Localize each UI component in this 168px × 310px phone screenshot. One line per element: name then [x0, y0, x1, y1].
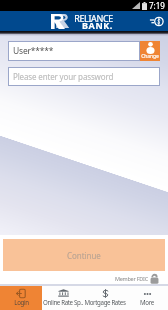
staticText: User*****: [13, 45, 54, 57]
button[interactable]: Quick transfer: [144, 11, 168, 32]
button[interactable]: More: [126, 286, 168, 310]
button[interactable]: Change: [140, 41, 160, 61]
staticText: Login: [14, 298, 29, 306]
staticText: 7:19: [149, 0, 165, 11]
button[interactable]: Continue: [3, 239, 165, 271]
staticText: Online Rate Sp..: [43, 298, 83, 306]
button[interactable]: User*****: [8, 41, 140, 61]
button[interactable]: Login: [0, 286, 42, 310]
staticText: Please enter your password: [13, 71, 114, 82]
button[interactable]: Online Rate Sp..: [42, 286, 84, 310]
button[interactable]: Please enter your password: [8, 67, 160, 86]
staticText: More: [140, 298, 154, 306]
staticText: BANK.: [63, 19, 113, 31]
staticText: Change: [141, 53, 159, 60]
staticText: RELIANCE: [63, 12, 113, 24]
staticText: Continue: [67, 250, 101, 261]
button[interactable]: Mortgage Rates: [84, 286, 126, 310]
staticText: Mortgage Rates: [84, 298, 126, 306]
staticText: Member FDIC: [115, 275, 148, 282]
